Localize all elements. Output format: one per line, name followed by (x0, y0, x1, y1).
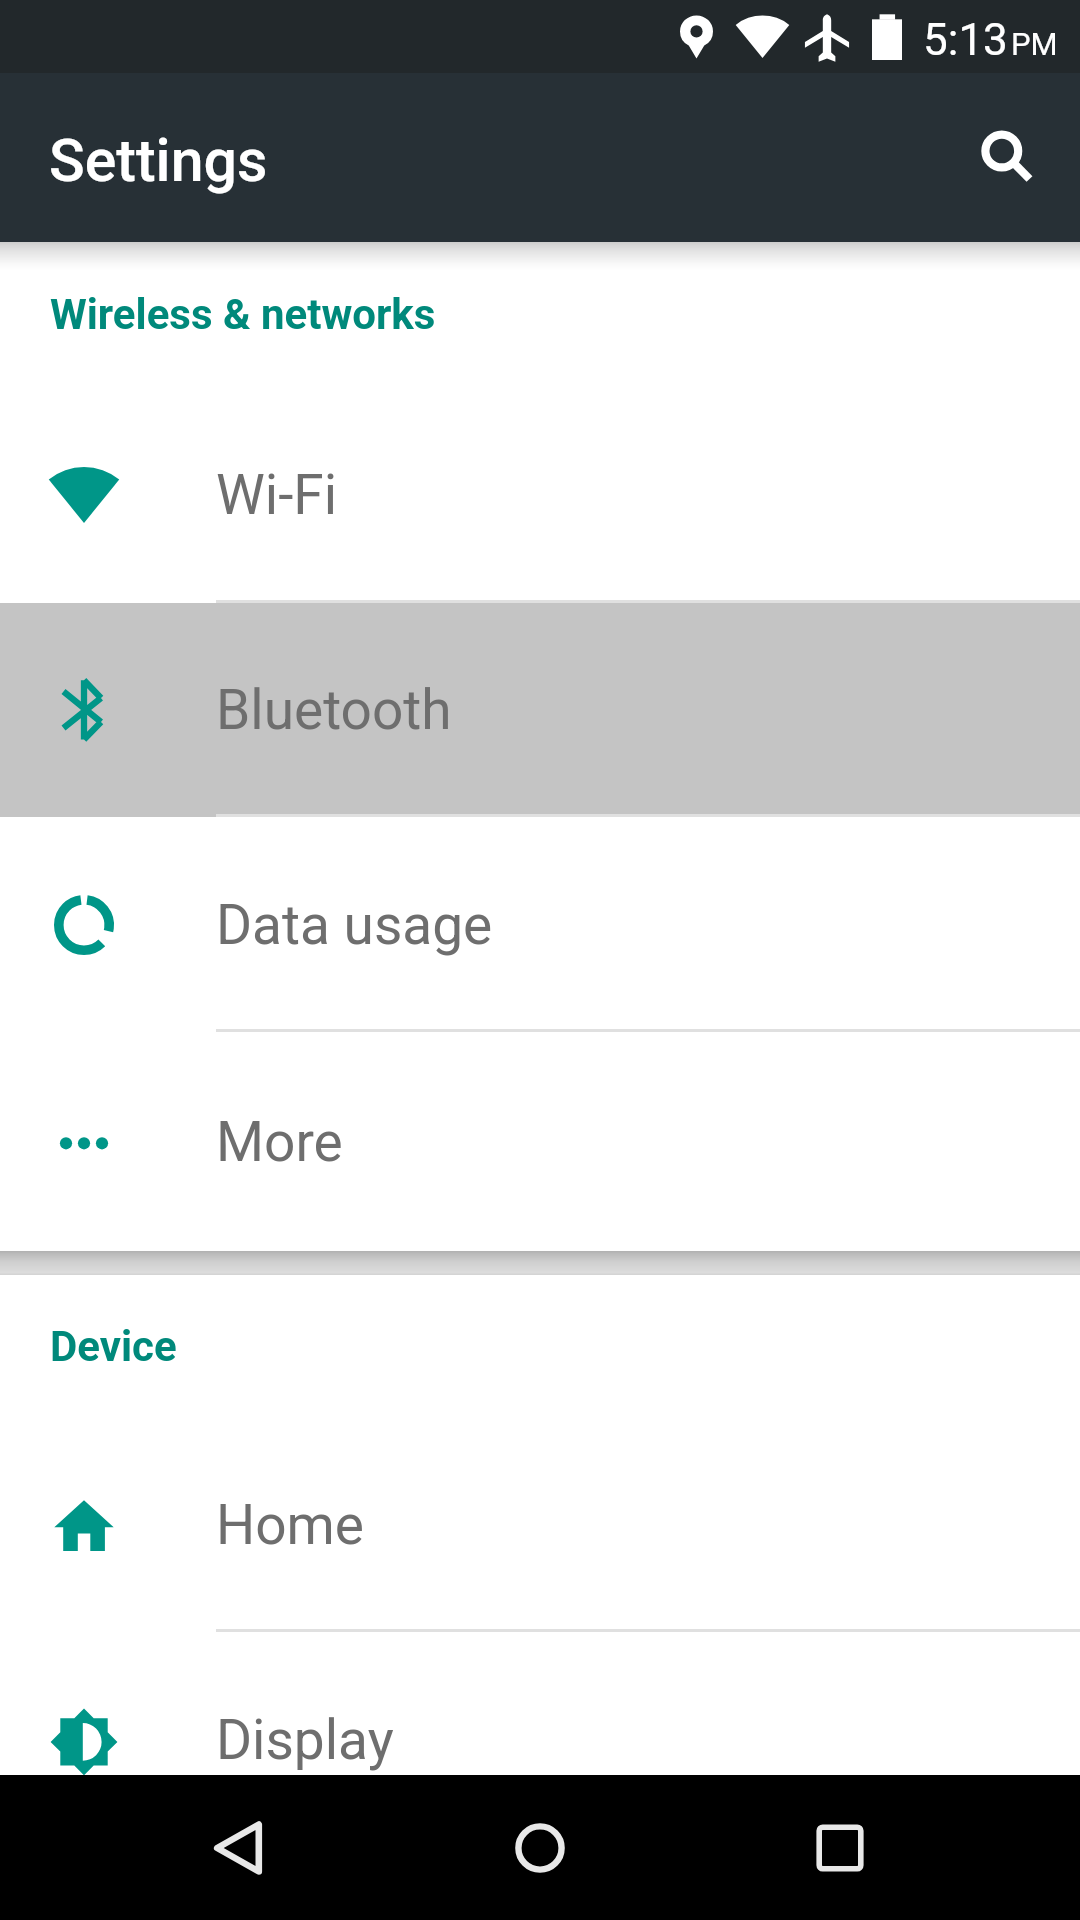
staticText: Settings (49, 126, 268, 195)
staticText: Wi-Fi (216, 463, 338, 527)
button[interactable]: Home (470, 1778, 610, 1918)
button[interactable]: Back (168, 1778, 308, 1918)
staticText: More (216, 1110, 343, 1174)
staticText: Device (50, 1322, 177, 1371)
staticText: Wireless & networks (50, 290, 436, 339)
button[interactable]: Recents (770, 1778, 910, 1918)
button[interactable]: Display (0, 1632, 1080, 1775)
staticText: 5:13 (923, 14, 1008, 66)
button[interactable]: More (0, 1032, 1080, 1251)
button[interactable]: Search (949, 98, 1069, 218)
staticText: Bluetooth (216, 678, 452, 742)
button[interactable]: Home (0, 1417, 1080, 1632)
button[interactable]: Bluetooth (0, 603, 1080, 817)
staticText: Home (216, 1493, 365, 1557)
button[interactable]: Wi-Fi (0, 387, 1080, 603)
staticText: Data usage (216, 893, 493, 957)
staticText: PM (1011, 26, 1058, 62)
button[interactable]: Data usage (0, 817, 1080, 1032)
staticText: Display (216, 1708, 394, 1772)
